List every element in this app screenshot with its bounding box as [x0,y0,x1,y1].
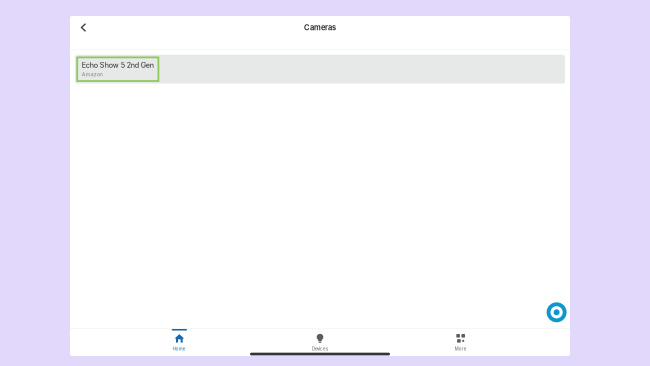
button[interactable]: Echo Show 5 2nd Gen [75,55,565,84]
staticText: Amazon [82,71,103,77]
button[interactable]: More [390,329,531,350]
button[interactable]: Devices [250,329,390,350]
staticText: Devices [312,346,328,351]
staticText: More [455,346,467,351]
staticText: Echo Show 5 2nd Gen [82,61,154,69]
button[interactable]: Home [109,329,250,350]
staticText: Cameras [304,23,336,32]
button[interactable]: Back [74,18,92,36]
staticText: Home [173,346,186,351]
button[interactable]: Alexa [547,302,567,322]
